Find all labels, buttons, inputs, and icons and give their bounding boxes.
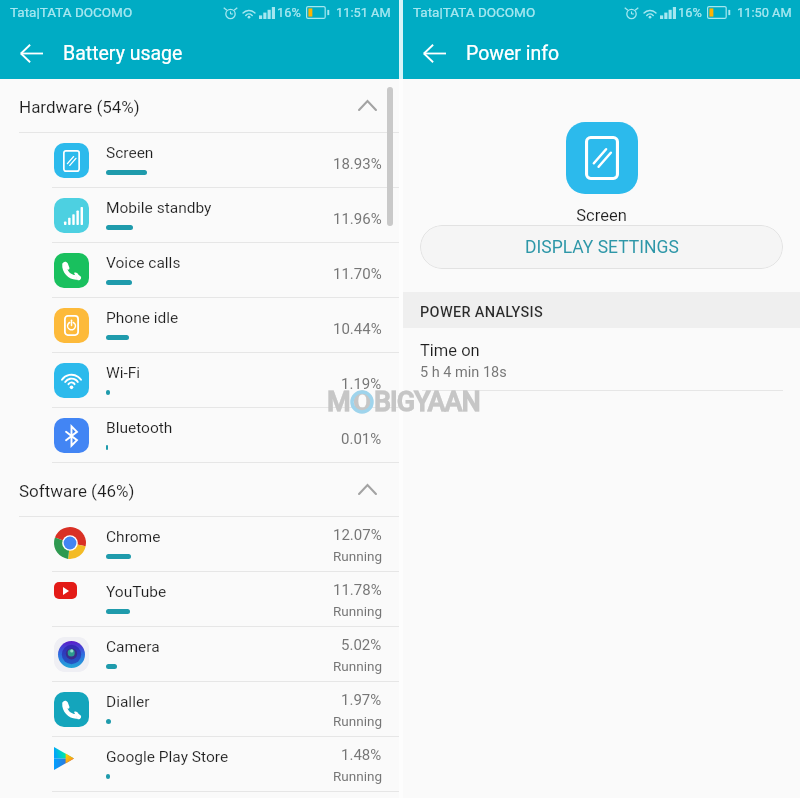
button[interactable]: DISPLAY SETTINGS [420,225,783,269]
button[interactable]: Screen [0,133,399,188]
staticText: 1.97% [341,691,382,709]
staticText: 11.96% [333,210,382,228]
staticText: M [327,386,350,418]
staticText: Software (46%) [19,481,135,501]
staticText: POWER ANALYSIS [420,304,544,321]
button[interactable]: Dialler [0,682,399,737]
button[interactable]: Google Play Store [0,737,399,792]
staticText: Phone idle [106,309,179,327]
staticText: Tata|TATA DOCOMO [10,4,133,20]
staticText: BIGYAAN [374,386,480,418]
staticText: Screen [106,144,154,162]
staticText: 11.70% [333,265,382,283]
staticText: Time on [420,341,480,360]
staticText: Mobile standby [106,199,212,217]
button[interactable]: YouTube [0,572,399,627]
staticText: 11.78% [333,581,382,599]
staticText: Running [333,603,382,619]
staticText: 0.01% [341,430,382,448]
staticText: Google Play Store [106,748,229,766]
staticText: Tata|TATA DOCOMO [413,4,536,20]
staticText: 10.44% [333,320,382,338]
staticText: 16% [678,5,702,20]
staticText: Voice calls [106,254,181,272]
button[interactable]: Back [414,33,454,73]
staticText: Power info [466,42,560,65]
staticText: Running [333,713,382,729]
staticText: 1.19% [341,375,382,393]
staticText: Running [333,768,382,784]
button[interactable]: Wi-Fi [0,353,399,408]
staticText: Bluetooth [106,419,173,437]
staticText: 16% [277,5,301,20]
button[interactable]: Chrome [0,517,399,572]
button[interactable]: Bluetooth [0,408,399,463]
staticText: Battery usage [63,42,183,65]
button[interactable]: Phone idle [0,298,399,353]
button[interactable]: Hardware (54%) [0,79,399,133]
button[interactable]: Mobile standby [0,188,399,243]
staticText: Dialler [106,693,150,711]
staticText: Running [333,658,382,674]
staticText: 11:50 AM [737,5,792,20]
button[interactable]: Time on [403,328,800,391]
staticText: 5.02% [341,636,382,654]
staticText: Wi-Fi [106,364,141,382]
button[interactable]: Back [11,33,51,73]
staticText: O [353,386,372,418]
staticText: Screen [403,206,800,225]
staticText: 18.93% [333,155,382,173]
staticText: 1.48% [341,746,382,764]
button[interactable]: Voice calls [0,243,399,298]
staticText: Hardware (54%) [19,97,140,117]
staticText: 12.07% [333,526,382,544]
staticText: 11:51 AM [336,5,391,20]
staticText: DISPLAY SETTINGS [525,237,679,258]
button[interactable]: Camera [0,627,399,682]
staticText: Running [333,548,382,564]
staticText: 5 h 4 min 18s [420,364,507,381]
staticText: Chrome [106,528,161,546]
button[interactable]: Software (46%) [0,463,399,517]
staticText: Camera [106,638,160,656]
staticText: YouTube [106,583,167,601]
